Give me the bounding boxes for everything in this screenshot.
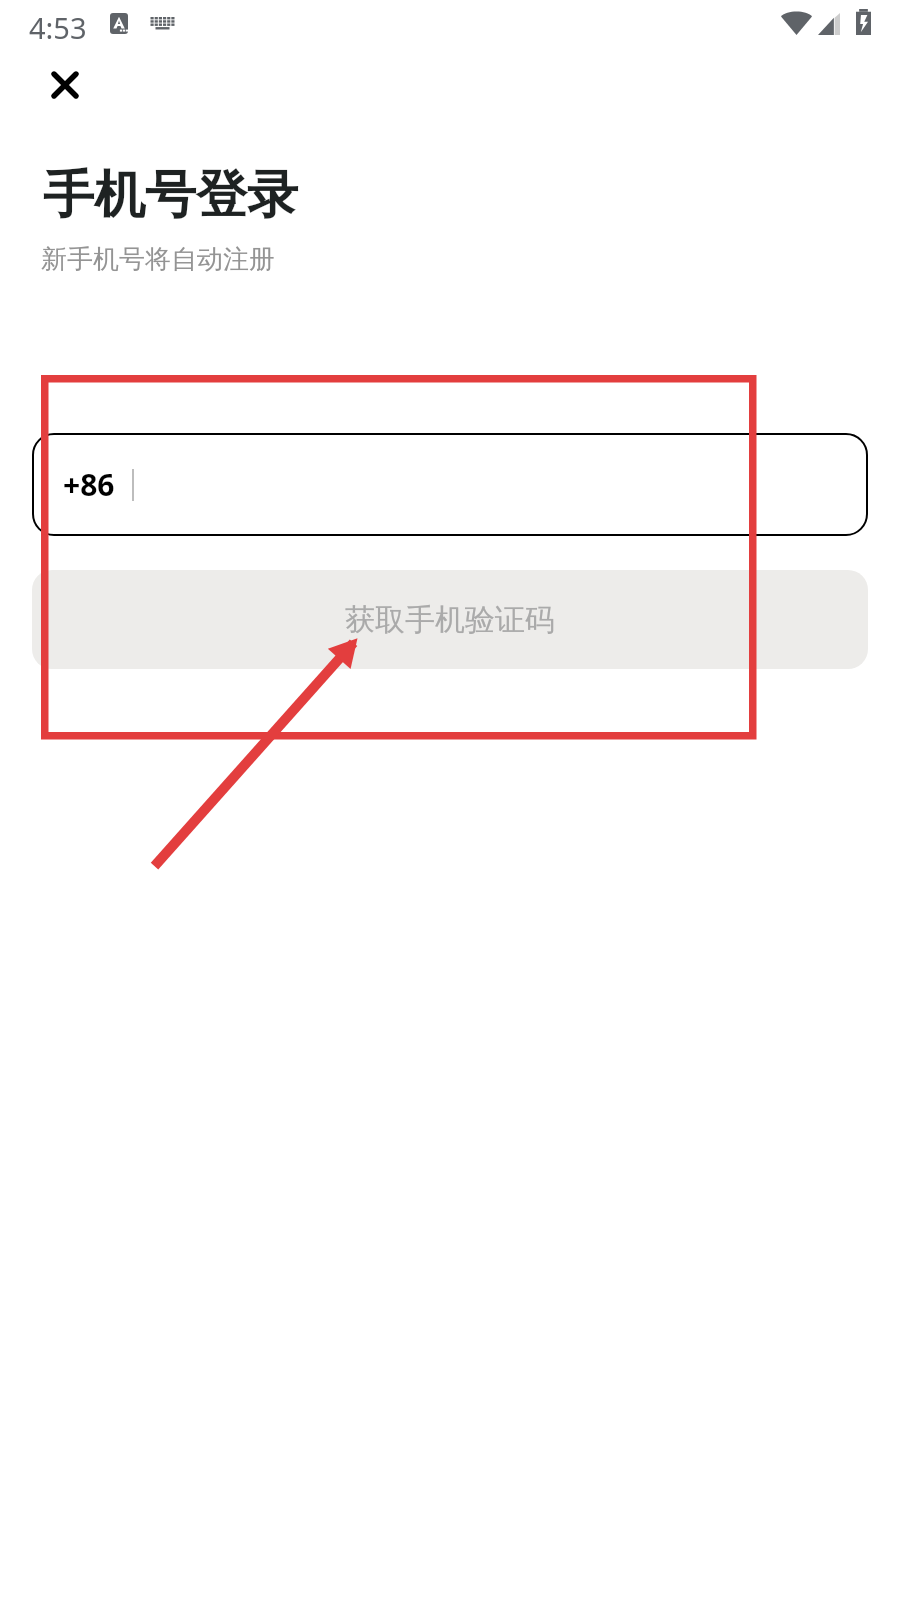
button[interactable]: Close (23, 57, 107, 113)
button[interactable]: +86 (32, 433, 868, 536)
staticText: 4:53 (29, 8, 87, 47)
staticText: 新手机号将自动注册 (41, 243, 275, 276)
button[interactable]: 获取手机验证码 (32, 570, 868, 669)
staticText: 获取手机验证码 (345, 601, 555, 639)
staticText: 手机号登录 (43, 163, 298, 227)
staticText: +86 (63, 464, 115, 505)
